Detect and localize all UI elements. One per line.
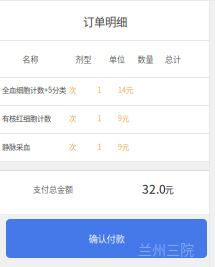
staticText: 1 <box>97 113 101 123</box>
staticText: 有核红细胞计数 <box>2 113 51 123</box>
staticText: 9元 <box>118 113 129 123</box>
staticText: 订单明细 <box>83 13 127 30</box>
button[interactable]: 兰州三院 <box>6 219 207 258</box>
staticText: 次 <box>69 84 76 95</box>
staticText: 数量 <box>137 53 153 65</box>
staticText: 单位 <box>109 53 125 65</box>
staticText: 确认付款 <box>88 232 124 245</box>
staticText: 剂型 <box>75 53 91 65</box>
staticText: 静脉采血 <box>2 141 30 152</box>
staticText: 次 <box>69 141 76 152</box>
staticText: 全血细胞计数+5分类 <box>2 84 66 95</box>
staticText: 兰州三院 <box>138 239 194 259</box>
staticText: 1 <box>97 84 101 95</box>
staticText: 次 <box>69 113 76 123</box>
staticText: 总计 <box>165 53 181 65</box>
staticText: 9元 <box>118 141 129 152</box>
staticText: 14元 <box>118 84 133 95</box>
staticText: 名称 <box>22 53 38 65</box>
staticText: 支付总金额 <box>33 183 73 195</box>
staticText: 1 <box>97 141 101 152</box>
staticText: 元 <box>165 183 174 196</box>
staticText: 32.0 <box>142 180 166 197</box>
